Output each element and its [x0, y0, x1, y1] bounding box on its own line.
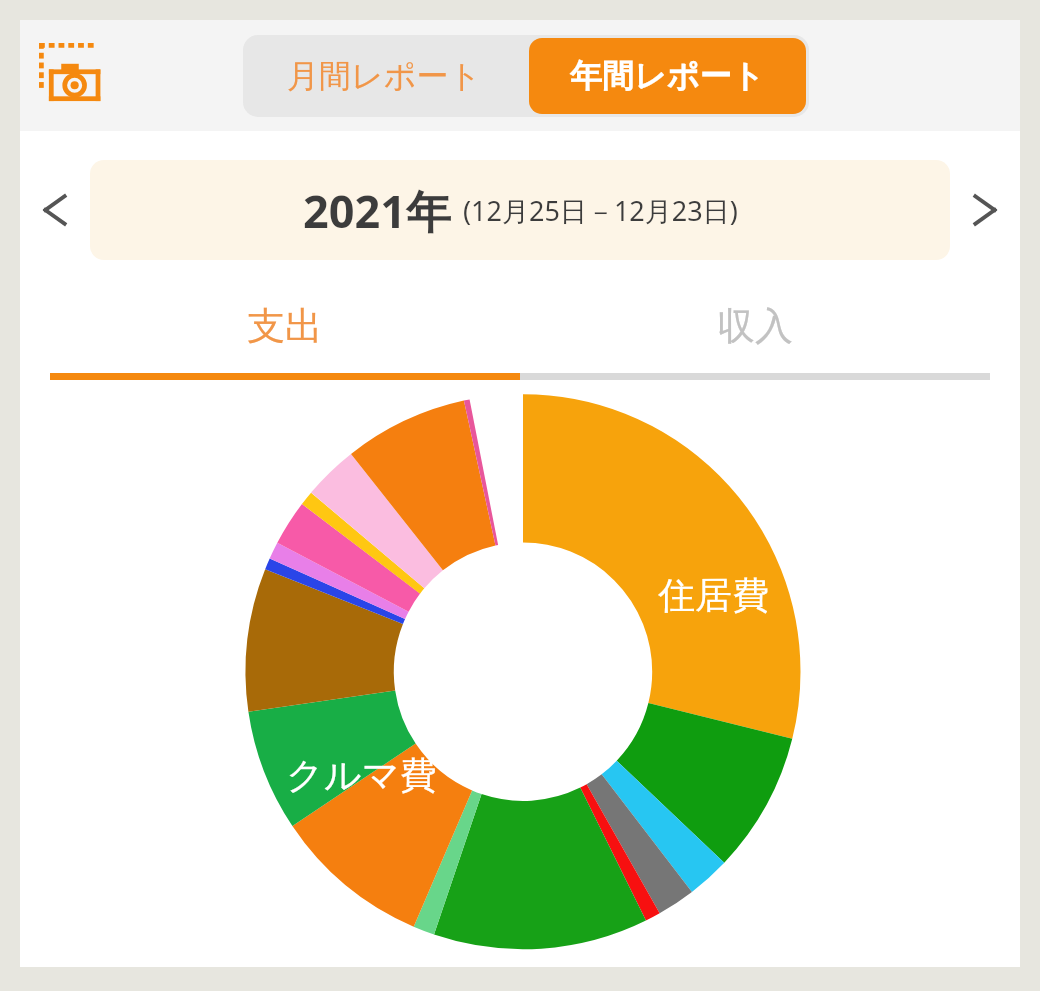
button[interactable]: 2021年	[90, 160, 950, 260]
button[interactable]: 収入	[520, 289, 990, 363]
staticText: 2021年	[303, 180, 451, 241]
staticText: (12月25日－12月23日)	[463, 192, 738, 229]
staticText: 収入	[717, 302, 793, 350]
button[interactable]: Next year	[954, 179, 1016, 241]
staticText: 住居費	[658, 572, 769, 619]
button[interactable]: Screenshot	[34, 38, 110, 114]
staticText: 年間レポート	[570, 56, 765, 96]
button[interactable]: Previous year	[24, 179, 86, 241]
button[interactable]: 年間レポート	[529, 38, 806, 114]
staticText: 支出	[247, 302, 323, 350]
button[interactable]: 支出	[50, 289, 520, 363]
staticText: クルマ費	[286, 752, 437, 799]
button[interactable]: 月間レポート	[243, 35, 526, 117]
staticText: 月間レポート	[287, 56, 482, 96]
